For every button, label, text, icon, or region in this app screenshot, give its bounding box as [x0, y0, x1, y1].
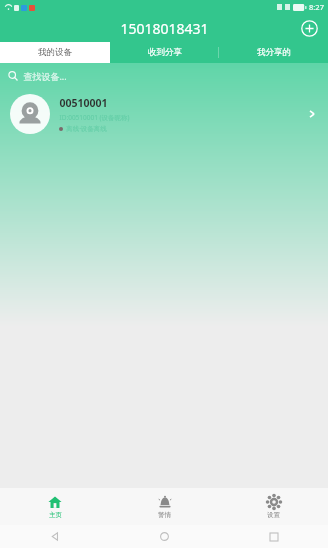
other: Open device: [306, 108, 318, 120]
staticText: 主页: [49, 511, 62, 519]
staticText: 8:27: [309, 2, 324, 12]
staticText: 我分享的: [257, 47, 291, 58]
button[interactable]: 设置: [219, 488, 328, 525]
button[interactable]: 警情: [110, 488, 219, 525]
button[interactable]: 我的设备: [0, 42, 110, 63]
button[interactable]: Back: [0, 525, 110, 548]
staticText: 离线·设备离线: [66, 124, 107, 133]
button[interactable]: 主页: [0, 488, 110, 525]
staticText: ID:00510001 (设备昵称): [59, 113, 130, 122]
staticText: 警情: [158, 511, 171, 519]
button[interactable]: Home: [110, 525, 219, 548]
staticText: 设置: [267, 511, 280, 519]
staticText: 查找设备...: [23, 70, 67, 82]
button[interactable]: Recents: [219, 525, 328, 548]
button[interactable]: 收到分享: [110, 42, 219, 63]
staticText: 15018018431: [120, 19, 209, 38]
button[interactable]: 我分享的: [219, 42, 328, 63]
staticText: 我的设备: [38, 47, 72, 58]
button[interactable]: Add device: [296, 15, 322, 41]
staticText: 收到分享: [148, 47, 182, 58]
button[interactable]: 00510001: [0, 88, 328, 140]
button[interactable]: 查找设备...: [0, 63, 328, 88]
staticText: 00510001: [59, 96, 108, 110]
